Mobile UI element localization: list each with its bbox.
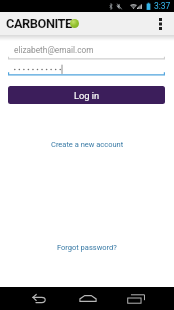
button[interactable]: Recent apps: [117, 287, 154, 310]
staticText: CARBONITE: [6, 16, 72, 31]
staticText: elizabeth@email.com: [14, 45, 94, 55]
staticText: Log in: [74, 90, 100, 101]
staticText: 3:37: [154, 1, 171, 11]
button[interactable]: More options: [152, 12, 174, 35]
button[interactable]: Back: [20, 287, 57, 310]
button[interactable]: Home: [69, 287, 106, 310]
button[interactable]: Log in: [8, 86, 165, 104]
button[interactable]: Forgot password?: [51, 241, 123, 254]
button[interactable]: Create a new account: [45, 138, 130, 151]
